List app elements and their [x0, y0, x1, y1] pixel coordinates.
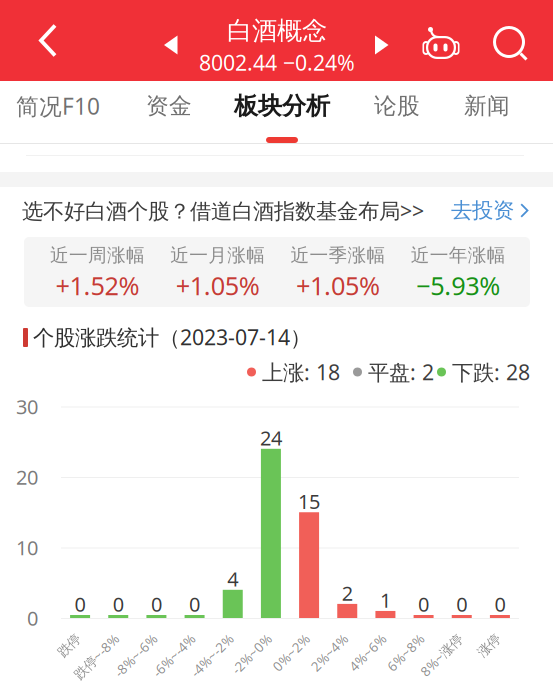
button[interactable]: Search — [484, 13, 538, 75]
button[interactable]: 论股 — [347, 81, 447, 144]
staticText: -6%~-4% — [145, 625, 199, 643]
staticText: 跌停 — [58, 626, 84, 642]
staticText: 论股 — [374, 92, 420, 120]
staticText: 8002.44 −0.24% — [199, 48, 355, 77]
staticText: -2%~0% — [225, 625, 275, 643]
button[interactable]: 板块分析 — [222, 81, 342, 144]
staticText: 个股涨跌统计（2023-07-14） — [33, 323, 311, 351]
staticText: +1.05% — [296, 269, 380, 302]
staticText: 0 — [418, 591, 429, 617]
button[interactable]: AI assistant — [413, 10, 469, 72]
staticText: 近一季涨幅 — [290, 244, 385, 267]
staticText: 近一月涨幅 — [170, 244, 265, 267]
button[interactable]: 新闻 — [435, 81, 539, 144]
staticText: -4%~-2% — [183, 625, 237, 643]
staticText: 15 — [298, 488, 320, 515]
staticText: 白酒概念 — [227, 15, 327, 46]
staticText: -8%~-6% — [106, 625, 160, 643]
staticText: −5.93% — [416, 269, 500, 302]
staticText: 近一年涨幅 — [411, 244, 506, 267]
staticText: 近一周涨幅 — [50, 244, 145, 267]
button[interactable]: Next symbol — [361, 19, 403, 71]
button[interactable]: Back — [15, 0, 81, 81]
staticText: 0 — [456, 591, 467, 617]
staticText: 资金 — [146, 92, 192, 120]
staticText: 2 — [342, 580, 353, 606]
staticText: 30 — [16, 393, 38, 420]
staticText: 下跌: 28 — [452, 358, 530, 386]
staticText: 选不好白酒个股？借道白酒指数基金布局>> — [22, 196, 424, 225]
staticText: 平盘: 2 — [368, 358, 434, 386]
staticText: 0 — [189, 591, 200, 617]
staticText: 板块分析 — [234, 91, 330, 121]
staticText: 新闻 — [464, 92, 510, 120]
staticText: 4%~6% — [343, 625, 389, 643]
staticText: 0 — [494, 591, 505, 617]
staticText: 1 — [380, 587, 391, 613]
staticText: 0%~2% — [267, 625, 313, 643]
staticText: 跌停~-8% — [65, 625, 122, 643]
button[interactable]: 资金 — [121, 81, 217, 144]
staticText: 简况F10 — [16, 91, 100, 121]
button[interactable]: 简况F10 — [2, 81, 114, 144]
staticText: 24 — [260, 424, 282, 451]
staticText: 2%~4% — [305, 625, 351, 643]
staticText: 涨停 — [478, 626, 504, 642]
staticText: 10 — [16, 534, 38, 561]
staticText: 0 — [151, 591, 162, 617]
staticText: 6%~8% — [382, 625, 428, 643]
staticText: 0 — [113, 591, 124, 617]
staticText: +1.05% — [176, 269, 260, 302]
staticText: 4 — [227, 565, 238, 592]
staticText: 20 — [16, 464, 38, 490]
staticText: 0 — [75, 591, 86, 617]
button[interactable]: 选不好白酒个股？借道白酒指数基金布局>> — [0, 187, 553, 234]
staticText: +1.52% — [55, 269, 139, 302]
staticText: 8%~涨停 — [413, 625, 466, 643]
button[interactable]: Previous symbol — [150, 19, 192, 71]
staticText: 上涨: 18 — [262, 358, 340, 386]
staticText: 0 — [27, 605, 38, 631]
staticText: 去投资 — [451, 197, 514, 224]
